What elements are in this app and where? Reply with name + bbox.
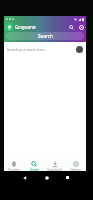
staticText: Search bbox=[38, 33, 53, 39]
staticText: Search your music here... bbox=[7, 47, 48, 52]
button[interactable]: Downloads bbox=[44, 159, 65, 171]
button[interactable]: Back bbox=[20, 173, 29, 182]
button[interactable]: Search bbox=[67, 23, 75, 31]
staticText: Graysane bbox=[15, 24, 36, 30]
button[interactable]: Search bbox=[6, 32, 84, 40]
staticText: Search bbox=[30, 168, 39, 171]
button[interactable]: Settings bbox=[65, 159, 86, 171]
button[interactable]: Home bbox=[42, 173, 51, 182]
staticText: Downloads bbox=[47, 168, 62, 171]
button[interactable]: More options bbox=[77, 23, 85, 31]
button[interactable]: Trending bbox=[4, 159, 24, 171]
button[interactable]: Recents bbox=[63, 173, 72, 182]
staticText: Settings bbox=[70, 168, 81, 171]
staticText: Trending bbox=[8, 168, 20, 171]
button[interactable]: Profile bbox=[76, 46, 83, 53]
button[interactable]: Search bbox=[24, 159, 44, 171]
